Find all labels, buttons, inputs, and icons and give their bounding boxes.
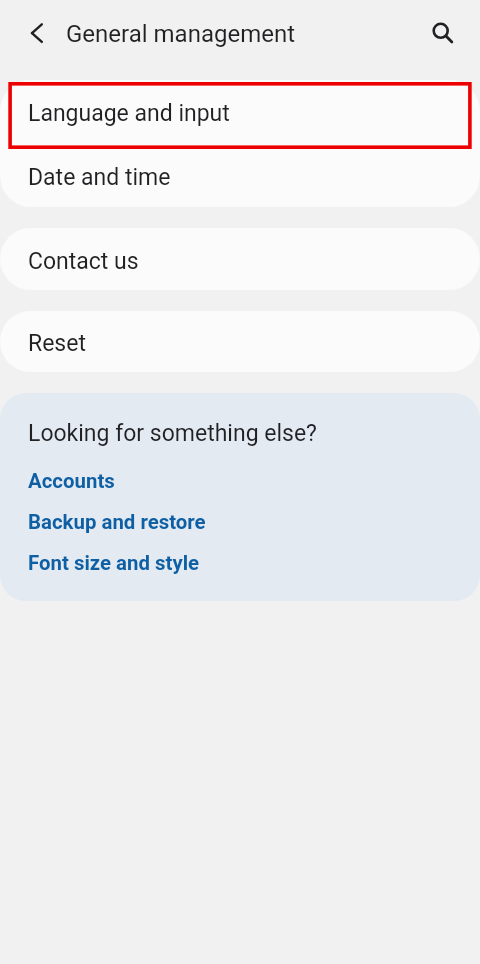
staticText: General management xyxy=(66,20,296,48)
staticText: Backup and restore xyxy=(28,510,206,534)
button[interactable]: Reset xyxy=(0,311,480,372)
button[interactable]: Font size and style xyxy=(0,542,480,583)
button[interactable]: Language and input xyxy=(0,80,480,143)
button[interactable]: Backup and restore xyxy=(0,501,480,542)
staticText: Language and input xyxy=(28,100,230,127)
button[interactable]: Search xyxy=(420,9,468,57)
staticText: Accounts xyxy=(28,469,115,493)
button[interactable]: Navigate back xyxy=(14,11,58,55)
button[interactable]: Accounts xyxy=(0,460,480,501)
staticText: Font size and style xyxy=(28,551,200,575)
staticText: Reset xyxy=(28,330,86,357)
button[interactable]: Contact us xyxy=(0,228,480,290)
staticText: Looking for something else? xyxy=(28,420,317,447)
staticText: Contact us xyxy=(28,248,139,275)
button[interactable]: Date and time xyxy=(0,143,480,207)
staticText: Date and time xyxy=(28,164,171,191)
